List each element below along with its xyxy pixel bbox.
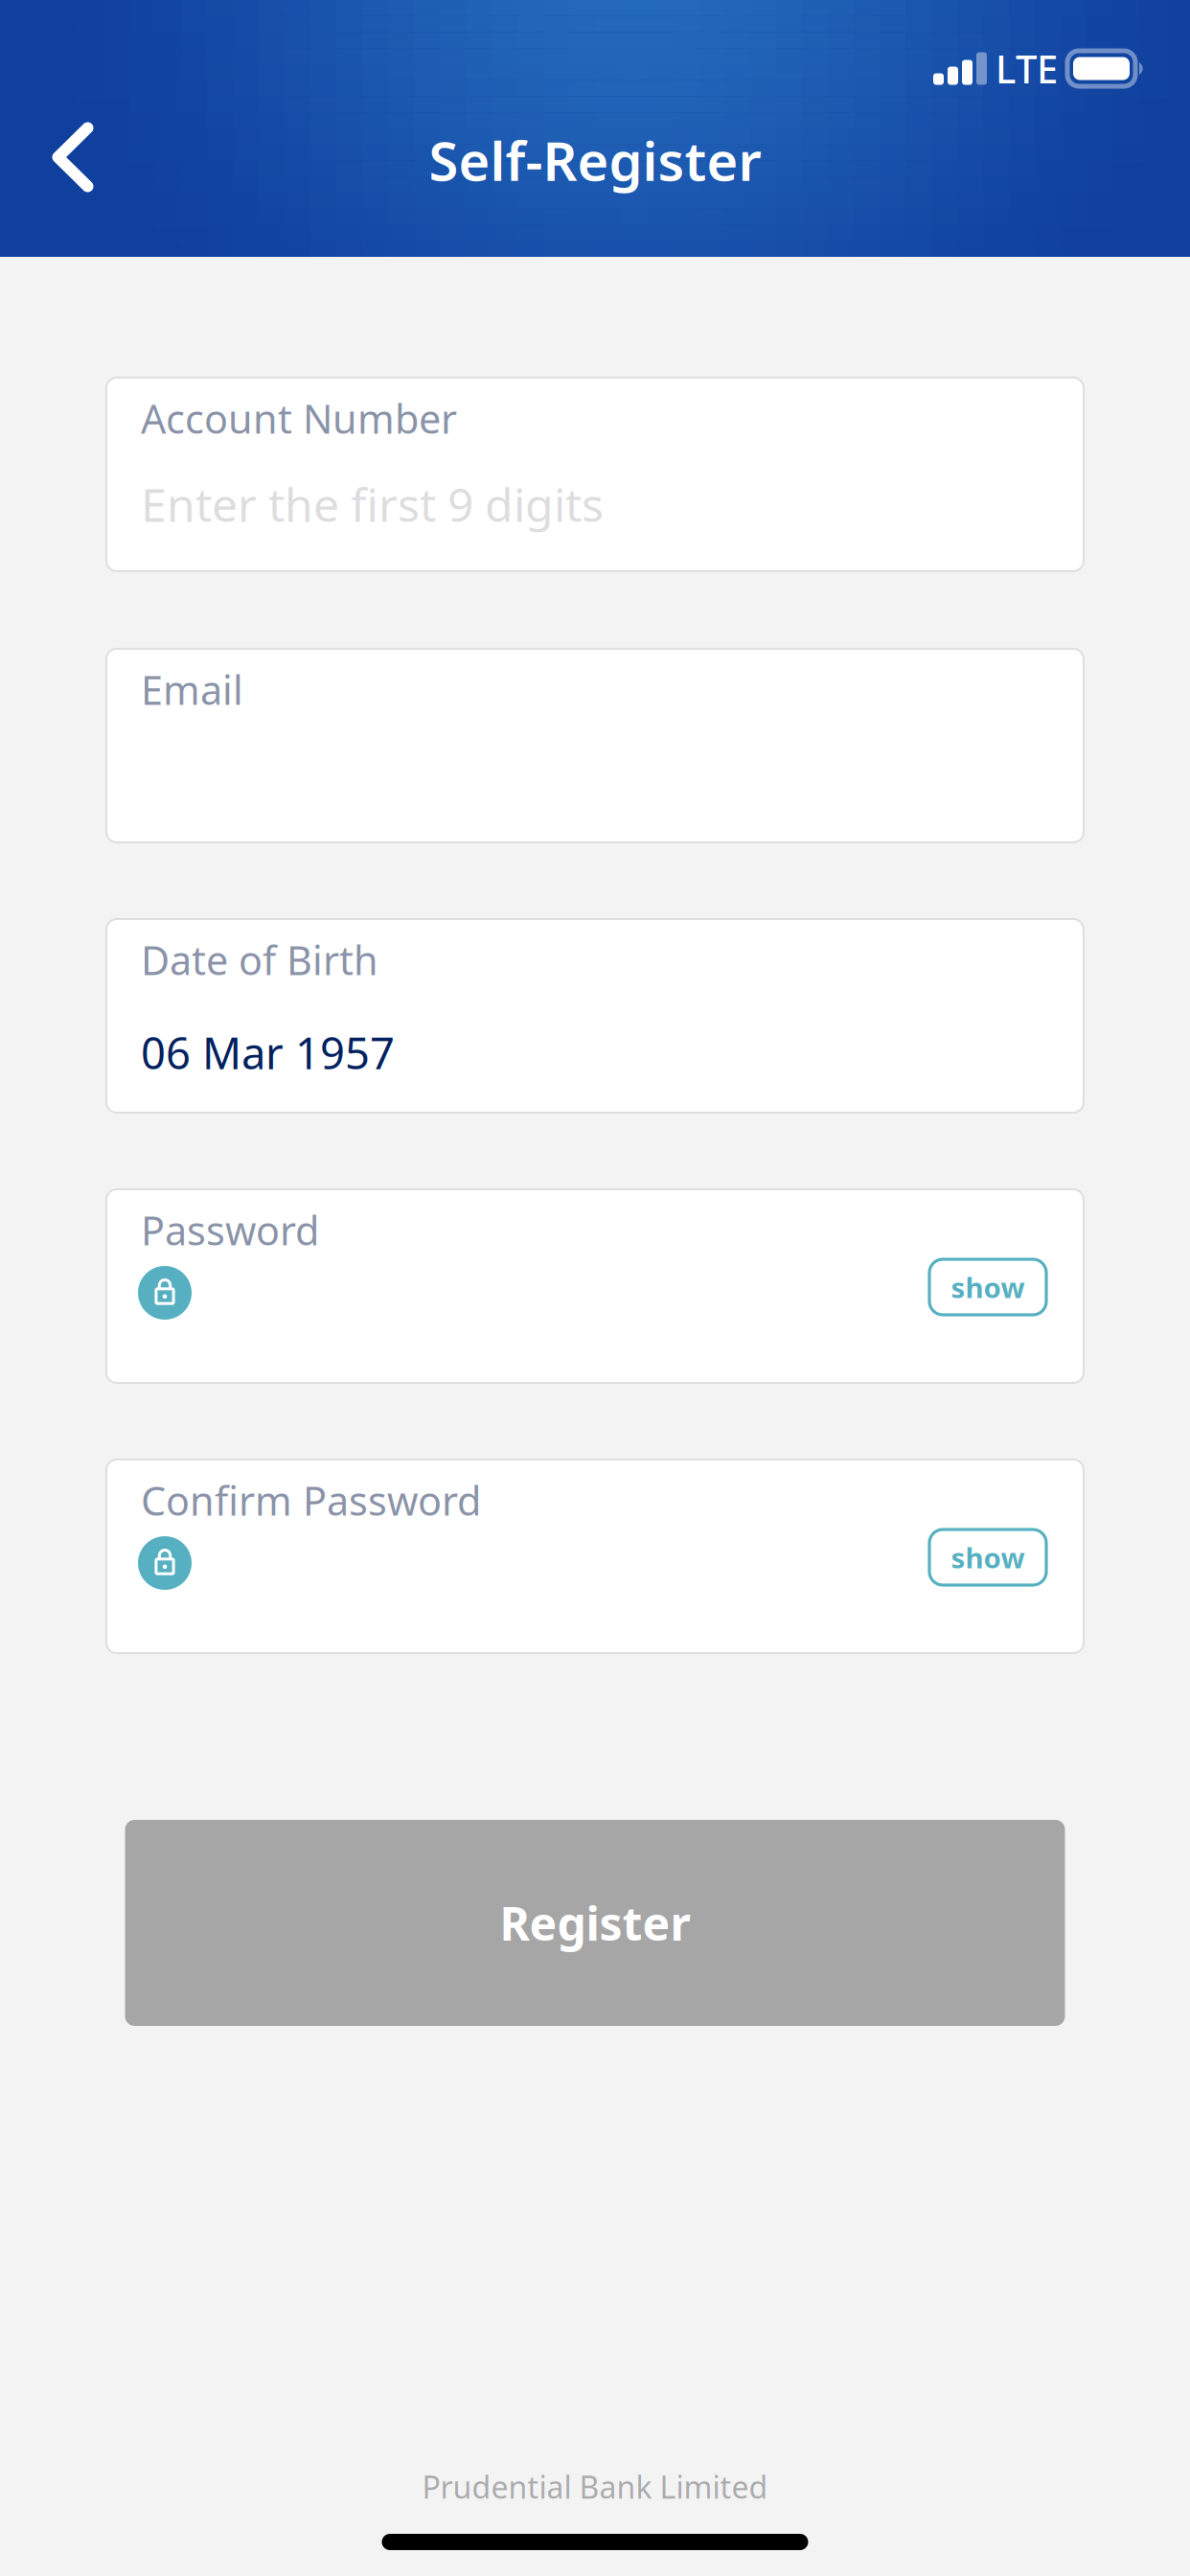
staticText: Confirm Password <box>141 1474 481 1527</box>
staticText: Prudential Bank Limited <box>422 2466 768 2507</box>
staticText: Self-Register <box>429 124 761 196</box>
button[interactable]: Confirm Password <box>106 1460 1084 1653</box>
staticText: Enter the first 9 digits <box>141 473 604 534</box>
button[interactable]: show <box>929 1529 1046 1585</box>
button[interactable]: Email <box>106 649 1084 842</box>
button[interactable]: Account Number <box>106 378 1084 571</box>
button[interactable]: Back <box>20 109 126 205</box>
staticText: 06 Mar 1957 <box>141 1023 395 1081</box>
button[interactable]: Date of Birth <box>106 919 1084 1113</box>
staticText: show <box>951 1539 1025 1576</box>
staticText: Password <box>141 1204 319 1256</box>
staticText: LTE <box>995 43 1058 94</box>
button[interactable]: Password <box>106 1189 1084 1383</box>
button[interactable]: show <box>929 1259 1046 1315</box>
staticText: Email <box>141 663 243 716</box>
staticText: show <box>951 1268 1025 1306</box>
button[interactable]: Register <box>125 1820 1065 2026</box>
staticText: Date of Birth <box>141 933 378 986</box>
staticText: Account Number <box>141 392 457 445</box>
staticText: Register <box>500 1892 690 1953</box>
